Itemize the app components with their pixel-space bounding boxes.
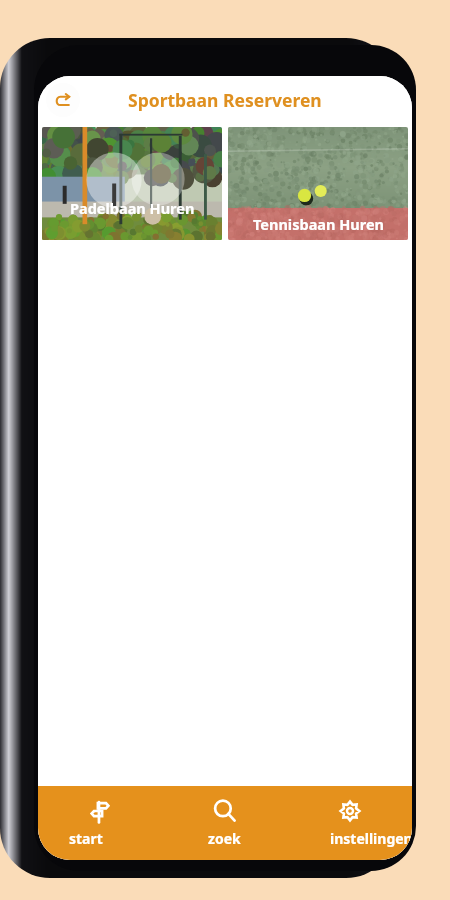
staticText: instellingen — [330, 829, 412, 848]
staticText: Padelbaan Huren — [70, 198, 195, 218]
staticText: Tennisbaan Huren — [253, 214, 384, 234]
button[interactable]: Padelbaan Huren — [42, 127, 222, 240]
button[interactable]: zoek — [162, 786, 287, 860]
button[interactable]: Tennisbaan Huren — [228, 127, 408, 240]
staticText: zoek — [208, 829, 241, 848]
staticText: Sportbaan Reserveren — [128, 88, 322, 112]
staticText: start — [69, 829, 103, 848]
button[interactable]: start — [38, 786, 162, 860]
button[interactable]: Back — [46, 83, 80, 117]
button[interactable]: instellingen — [287, 786, 412, 860]
